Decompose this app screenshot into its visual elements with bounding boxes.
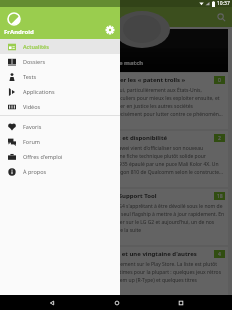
staticText: 10:37 (217, 0, 230, 7)
button[interactable]: Search (214, 10, 228, 24)
staticText: Les géants du Web s'allient pour limiter… (8, 76, 211, 84)
button[interactable]: Huawei Mate S : caractéristiques, prix e… (4, 131, 228, 187)
staticText: Plaque vitrocéramique vs induction, le m… (8, 59, 144, 67)
button[interactable]: Back (44, 295, 59, 310)
staticText: Les patent trolls sont ces individus ou … (7, 87, 225, 117)
staticText: Monument Valley, Limbo, The Room 2 et un… (8, 250, 211, 258)
staticText: Vidéos (23, 103, 41, 110)
button[interactable]: Offres d'emploi (0, 149, 120, 164)
staticText: Tests (23, 73, 37, 80)
staticText: Alors que le LG G3 a déjà reçu Lollipop,… (7, 203, 225, 233)
button[interactable]: Android 5.0 arrive sur le LG G2 via LG S… (4, 189, 228, 245)
staticText: FrAndroid (4, 28, 34, 36)
staticText: 4 (218, 251, 221, 258)
staticText: Applications (23, 88, 55, 95)
staticText: Dossiers (23, 58, 46, 65)
button[interactable]: Les géants du Web s'allient pour limiter… (4, 73, 228, 129)
staticText: L'annonce n'aura pas traîné et bien été … (7, 145, 225, 175)
button[interactable]: Forum (0, 134, 120, 149)
button[interactable]: Monument Valley, Limbo, The Room 2 et un… (4, 247, 228, 303)
staticText: Actualités (23, 43, 49, 50)
staticText: Forum (23, 138, 40, 145)
staticText: Huawei Mate S : caractéristiques, prix e… (8, 134, 211, 142)
staticText: 2 (218, 135, 221, 142)
button[interactable]: À propos (0, 164, 120, 179)
button[interactable]: Recents (173, 295, 188, 310)
staticText: À propos (23, 168, 47, 175)
button[interactable]: Favoris (0, 119, 120, 134)
button[interactable]: Plaque vitrocéramique vs induction, le m… (4, 29, 228, 72)
button[interactable]: Vidéos (0, 99, 120, 114)
staticText: Offres d'emploi (23, 153, 63, 160)
staticText: 18 (217, 193, 223, 200)
button[interactable]: Settings (104, 24, 115, 35)
button[interactable]: Tests (0, 69, 120, 84)
button[interactable]: Home (109, 295, 124, 310)
staticText: Android 5.0 arrive sur le LG G2 via LG S… (8, 192, 211, 200)
button[interactable]: Dossiers (0, 54, 120, 69)
staticText: Une bonne vingtaine de jeux sont bradés … (7, 261, 225, 291)
staticText: 0 (218, 77, 221, 84)
staticText: Favoris (23, 123, 42, 130)
button[interactable]: Actualités (0, 39, 120, 54)
button[interactable]: Applications (0, 84, 120, 99)
